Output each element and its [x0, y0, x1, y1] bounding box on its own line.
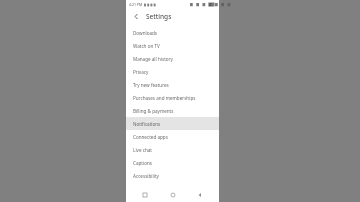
button[interactable]: Recents: [136, 188, 154, 202]
button[interactable]: Captions: [126, 156, 219, 169]
button[interactable]: Purchases and memberships: [126, 91, 219, 104]
button[interactable]: Watch on TV: [126, 39, 219, 52]
staticText: Try new features: [133, 82, 169, 88]
staticText: Settings: [146, 12, 172, 21]
button[interactable]: Back: [191, 188, 209, 202]
staticText: Privacy: [133, 69, 149, 75]
button[interactable]: Downloads: [126, 26, 219, 39]
button[interactable]: Notifications: [126, 117, 219, 130]
staticText: Downloads: [133, 30, 158, 36]
button[interactable]: Try new features: [126, 78, 219, 91]
staticText: Billing & payments: [133, 108, 174, 114]
button[interactable]: Billing & payments: [126, 104, 219, 117]
button[interactable]: Accessibility: [126, 169, 219, 182]
staticText: Captions: [133, 160, 152, 166]
button[interactable]: Privacy: [126, 65, 219, 78]
staticText: Connected apps: [133, 134, 168, 140]
staticText: Accessibility: [133, 173, 159, 179]
staticText: Purchases and memberships: [133, 95, 196, 101]
staticText: Manage all history: [133, 56, 173, 62]
staticText: Live chat: [133, 147, 152, 153]
staticText: 4:21 PM: [129, 2, 143, 7]
button[interactable]: Connected apps: [126, 130, 219, 143]
button[interactable]: Back: [131, 11, 142, 22]
button[interactable]: Home: [164, 188, 182, 202]
staticText: Watch on TV: [133, 43, 160, 49]
staticText: Notifications: [133, 121, 161, 127]
button[interactable]: Live chat: [126, 143, 219, 156]
button[interactable]: Manage all history: [126, 52, 219, 65]
